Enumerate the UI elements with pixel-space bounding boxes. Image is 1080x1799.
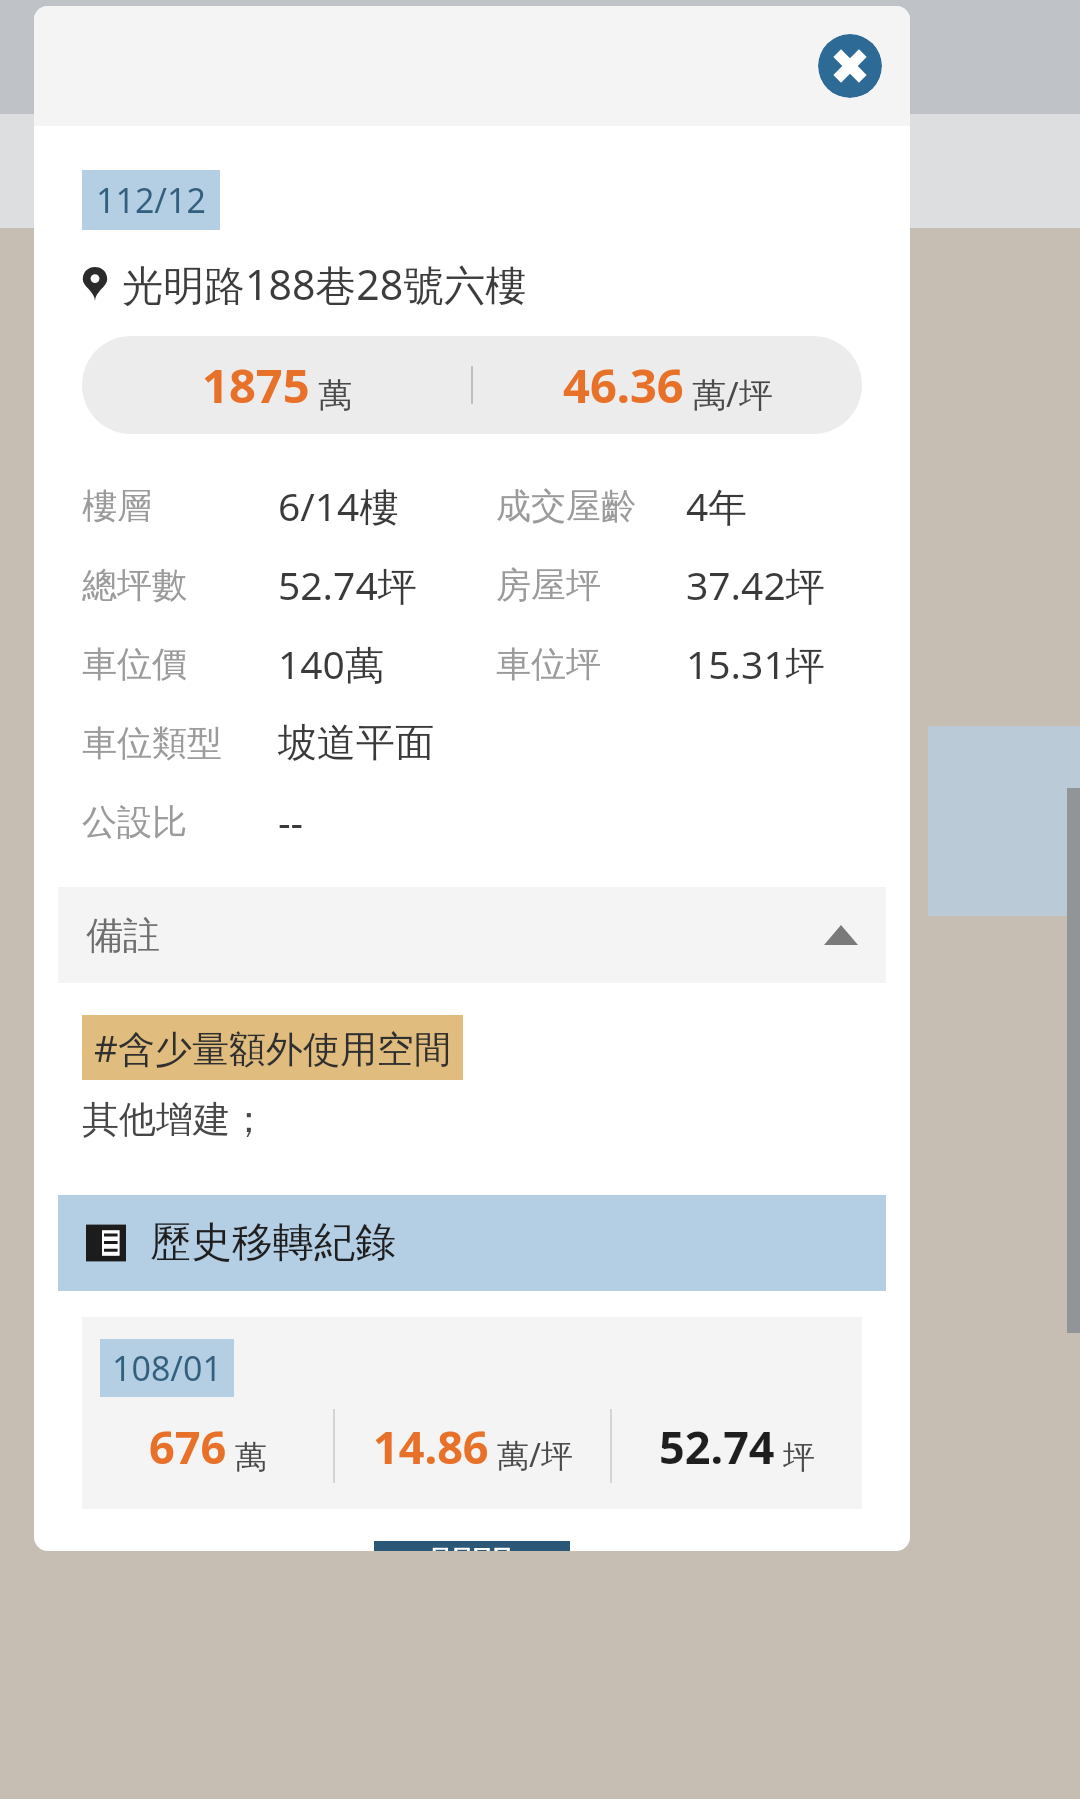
staticText: 37.42坪 [686,558,825,611]
button[interactable]: Close dialog [818,34,882,98]
staticText: 房屋坪 [496,563,601,607]
staticText: 車位坪 [496,642,601,686]
staticText: #含少量額外使用空間 [94,1022,451,1073]
staticText: 140萬 [278,637,384,690]
staticText: 676 [149,1416,227,1477]
staticText: 公設比 [82,800,187,844]
staticText: 萬/坪 [497,1433,573,1477]
staticText: 歷史移轉紀錄 [150,1217,396,1269]
staticText: 光明路188巷28號六樓 [122,256,527,312]
staticText: 備註 [86,912,160,959]
staticText: 15.31坪 [686,637,825,690]
staticText: 坪 [783,1437,815,1477]
staticText: 萬 [235,1437,267,1477]
button[interactable]: 歷史移轉紀錄 [58,1195,886,1291]
staticText: 112/12 [96,177,206,223]
staticText: 樓層 [82,484,152,528]
staticText: 4年 [686,479,748,532]
staticText: 1875 [202,353,310,417]
staticText: 14.86 [373,1416,489,1477]
staticText: 萬/坪 [692,371,773,417]
button[interactable]: 備註 [58,887,886,983]
staticText: 萬 [318,374,352,417]
staticText: 車位價 [82,642,187,686]
staticText: 其他增建； [82,1096,267,1143]
staticText: 成交屋齡 [496,484,636,528]
staticText: 52.74坪 [278,558,417,611]
staticText: 關閉 [431,1541,513,1551]
staticText: 52.74 [659,1416,775,1477]
staticText: 46.36 [563,353,684,417]
staticText: -- [278,795,304,848]
staticText: 車位類型 [82,721,222,765]
staticText: 108/01 [112,1345,222,1391]
staticText: 總坪數 [82,563,187,607]
staticText: 6/14樓 [278,479,399,532]
button[interactable]: 關閉 [374,1541,570,1551]
staticText: 坡道平面 [278,718,434,767]
